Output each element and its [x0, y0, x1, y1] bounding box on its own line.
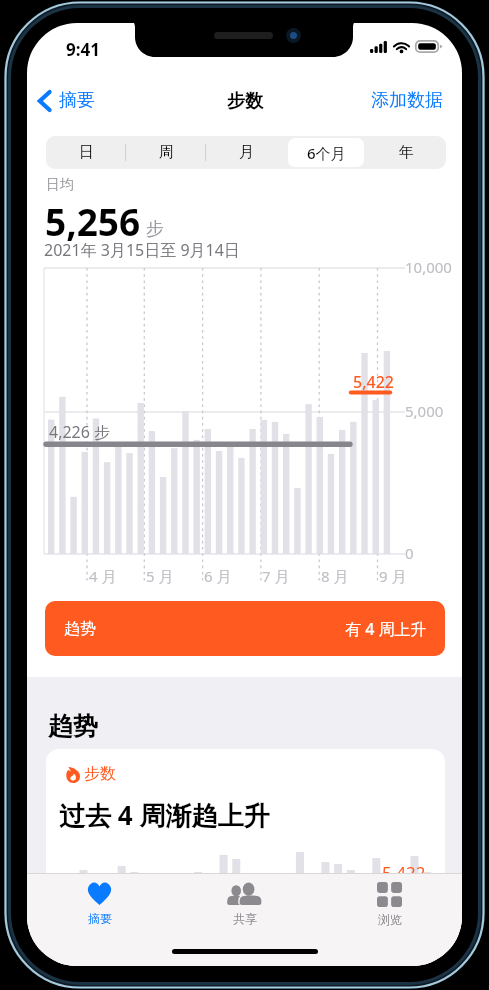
staticText: 6个月 — [307, 143, 346, 163]
staticText: 步数 — [84, 764, 116, 784]
staticText: 7 月 — [262, 566, 290, 586]
button[interactable]: 趋势 — [45, 601, 445, 656]
staticText: 有 4 周上升 — [345, 618, 427, 640]
staticText: 8 月 — [321, 566, 349, 586]
staticText: 过去 4 周渐趋上升 — [59, 797, 270, 833]
staticText: 日 — [79, 143, 94, 162]
staticText: 4 月 — [89, 566, 117, 586]
staticText: 6 月 — [204, 566, 232, 586]
staticText: 2021年 3月15日至 9月14日 — [44, 239, 240, 261]
button[interactable]: 添加数据 — [367, 84, 447, 117]
button[interactable]: 浏览 — [317, 882, 462, 938]
staticText: 5 月 — [146, 566, 174, 586]
staticText: 年 — [399, 143, 414, 162]
staticText: 趋势 — [64, 619, 96, 639]
button[interactable]: 年 — [368, 138, 444, 167]
staticText: 周 — [159, 143, 174, 162]
button[interactable]: 步数 — [46, 749, 445, 949]
staticText: 步 — [146, 218, 164, 241]
staticText: 摘要 — [59, 89, 95, 112]
staticText: 0 — [405, 543, 414, 563]
staticText: 4,226 步 — [49, 421, 111, 443]
staticText: 浏览 — [378, 912, 402, 927]
staticText: 日均 — [46, 176, 74, 194]
button[interactable]: 月 — [208, 138, 284, 167]
button[interactable]: 日 — [48, 138, 124, 167]
button[interactable]: 共享 — [172, 882, 317, 938]
button[interactable]: 周 — [128, 138, 204, 167]
button[interactable]: 摘要 — [27, 882, 172, 938]
staticText: 步数 — [227, 90, 263, 113]
button[interactable]: 6个月 — [288, 138, 364, 167]
staticText: 9 月 — [379, 566, 407, 586]
button[interactable]: 摘要 — [35, 84, 99, 117]
staticText: 5,000 — [405, 401, 444, 421]
staticText: 9:41 — [66, 38, 100, 61]
staticText: 5,256 — [45, 196, 141, 246]
staticText: 添加数据 — [371, 89, 443, 112]
staticText: 5,422 — [353, 371, 394, 393]
staticText: 10,000 — [405, 257, 452, 277]
staticText: 趋势 — [48, 711, 98, 742]
staticText: 共享 — [233, 911, 257, 926]
staticText: 月 — [239, 143, 254, 162]
staticText: 5,422 — [382, 861, 426, 884]
staticText: 摘要 — [88, 911, 112, 926]
